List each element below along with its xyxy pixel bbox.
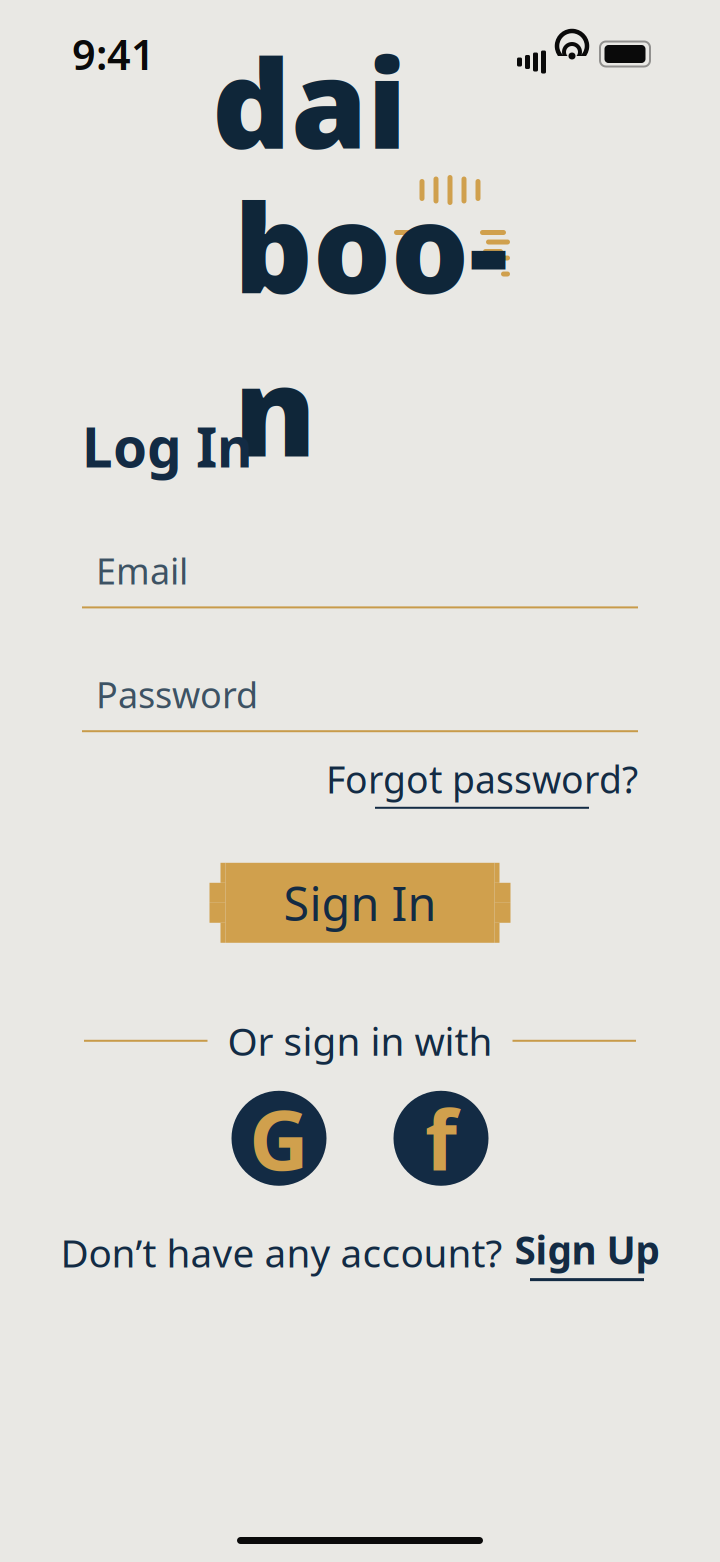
staticText: f <box>425 1083 457 1193</box>
button[interactable]: Don’t have any account? <box>60 1224 659 1281</box>
staticText: G <box>249 1083 309 1193</box>
staticText: Log In <box>82 410 253 483</box>
button[interactable]: Password <box>82 670 638 732</box>
staticText: Sign Up <box>514 1224 659 1275</box>
staticText: Or sign in with <box>227 1015 492 1066</box>
staticText: dai <box>212 20 407 183</box>
staticText: Don’t have any account? <box>60 1227 502 1278</box>
button[interactable]: Email <box>82 547 638 608</box>
staticText: Password <box>96 670 258 718</box>
button[interactable]: Sign in with Google <box>231 1091 326 1186</box>
staticText: Forgot password? <box>326 754 638 804</box>
button[interactable]: Sign in with Facebook <box>393 1091 488 1186</box>
button[interactable]: Forgot password? <box>326 754 638 809</box>
staticText: boon <box>234 165 508 490</box>
staticText: Sign In <box>283 872 436 934</box>
staticText: Email <box>96 547 188 594</box>
button[interactable]: Sign In <box>204 863 515 943</box>
staticText: 9:41 <box>72 27 155 81</box>
